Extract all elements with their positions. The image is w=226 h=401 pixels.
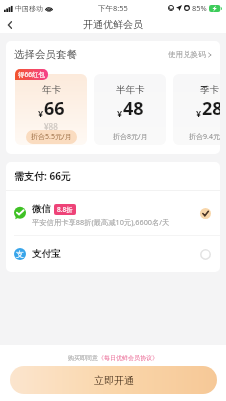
button[interactable]: 立即开通 xyxy=(10,366,217,394)
staticText: 支 xyxy=(16,249,24,259)
staticText: 85% xyxy=(192,3,207,13)
staticText: 28 xyxy=(202,96,220,121)
button[interactable]: 使用兑换码 xyxy=(168,50,212,59)
staticText: ¥ xyxy=(38,107,44,119)
staticText: 需支付: 66元 xyxy=(14,169,71,183)
staticText: 折合9.4元/月 xyxy=(189,132,220,142)
staticText: 下午8:55 xyxy=(98,3,128,13)
staticText: 微信 xyxy=(32,203,51,215)
staticText: 购买即同意 xyxy=(68,354,98,362)
staticText: 使用兑换码 xyxy=(168,50,206,59)
button[interactable]: 《每日优鲜会员协议》 xyxy=(98,354,158,362)
staticText: ¥ xyxy=(196,107,202,119)
staticText: 开通优鲜会员 xyxy=(83,18,143,31)
staticText: ¥ xyxy=(117,107,123,119)
button[interactable]: 年卡 xyxy=(15,74,87,145)
staticText: 支付宝 xyxy=(32,248,61,260)
staticText: 半年卡 xyxy=(116,84,145,96)
staticText: 中国移动 xyxy=(15,4,43,13)
staticText: 66 xyxy=(44,96,65,121)
button[interactable]: Back xyxy=(0,16,20,33)
staticText: 折合5.5元/月 xyxy=(31,132,72,142)
staticText: 48 xyxy=(123,96,144,121)
staticText: 折合8元/月 xyxy=(113,132,148,142)
button[interactable]: 季卡 xyxy=(173,74,220,145)
staticText: ¥88 xyxy=(44,121,58,132)
staticText: 8.8折 xyxy=(57,205,73,214)
staticText: 得66红包 xyxy=(18,70,45,79)
staticText: 立即开通 xyxy=(94,374,134,387)
staticText: 平安信用卡享88折(最高减10元),6600名/天 xyxy=(32,217,170,227)
staticText: 选择会员套餐 xyxy=(14,48,77,61)
button[interactable]: 支 xyxy=(6,236,220,272)
staticText: 季卡 xyxy=(200,84,219,96)
button[interactable]: 微信 xyxy=(6,191,220,235)
button[interactable]: 半年卡 xyxy=(94,74,166,145)
staticText: 年卡 xyxy=(42,84,61,96)
